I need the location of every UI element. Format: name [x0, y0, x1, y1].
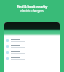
staticText: Find & book nearby — [0, 5, 64, 9]
staticText: electric chargers — [0, 9, 64, 13]
